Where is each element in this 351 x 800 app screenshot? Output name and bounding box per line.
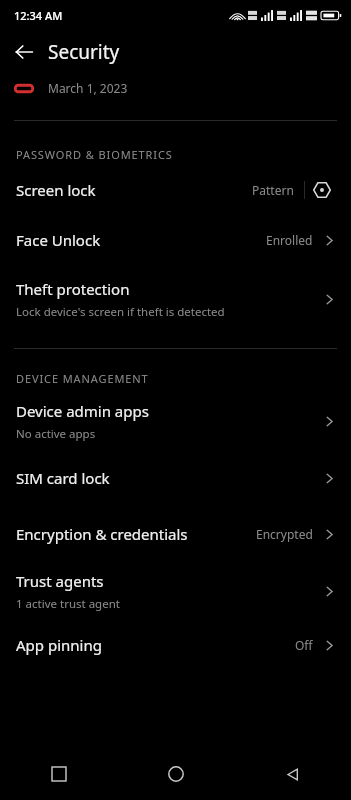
- staticText: Enrolled: [266, 232, 313, 248]
- staticText: Pattern: [252, 182, 294, 198]
- staticText: Encrypted: [256, 526, 313, 542]
- staticText: Lock device's screen if theft is detecte…: [16, 304, 225, 320]
- staticText: Device admin apps: [16, 401, 149, 421]
- button[interactable]: SIM card lock: [0, 450, 351, 506]
- staticText: Theft protection: [16, 279, 130, 299]
- button[interactable]: Device admin apps: [0, 392, 351, 450]
- staticText: Off: [295, 637, 313, 653]
- button[interactable]: Back: [234, 748, 351, 800]
- staticText: No active apps: [16, 426, 96, 442]
- button[interactable]: App pinning: [0, 620, 351, 670]
- staticText: App pinning: [16, 635, 102, 655]
- button[interactable]: Screen lock: [0, 168, 351, 212]
- staticText: DEVICE MANAGEMENT: [16, 371, 149, 386]
- button[interactable]: Theft protection: [0, 268, 351, 330]
- staticText: Trust agents: [16, 571, 104, 591]
- button[interactable]: Back: [0, 30, 48, 74]
- staticText: Security: [48, 39, 120, 65]
- staticText: Encryption & credentials: [16, 524, 188, 544]
- button[interactable]: Screen lock settings: [305, 173, 339, 207]
- staticText: SIM card lock: [16, 468, 110, 488]
- staticText: 12:34 AM: [14, 8, 63, 23]
- button[interactable]: Encryption & credentials: [0, 506, 351, 562]
- staticText: Face Unlock: [16, 230, 101, 250]
- button[interactable]: Trust agents: [0, 562, 351, 620]
- staticText: 1 active trust agent: [16, 596, 120, 612]
- staticText: Screen lock: [16, 180, 96, 200]
- staticText: PASSWORD & BIOMETRICS: [16, 147, 173, 162]
- button[interactable]: Face Unlock: [0, 212, 351, 268]
- button[interactable]: Recent apps: [0, 748, 117, 800]
- button[interactable]: Home: [117, 748, 234, 800]
- staticText: March 1, 2023: [48, 80, 128, 96]
